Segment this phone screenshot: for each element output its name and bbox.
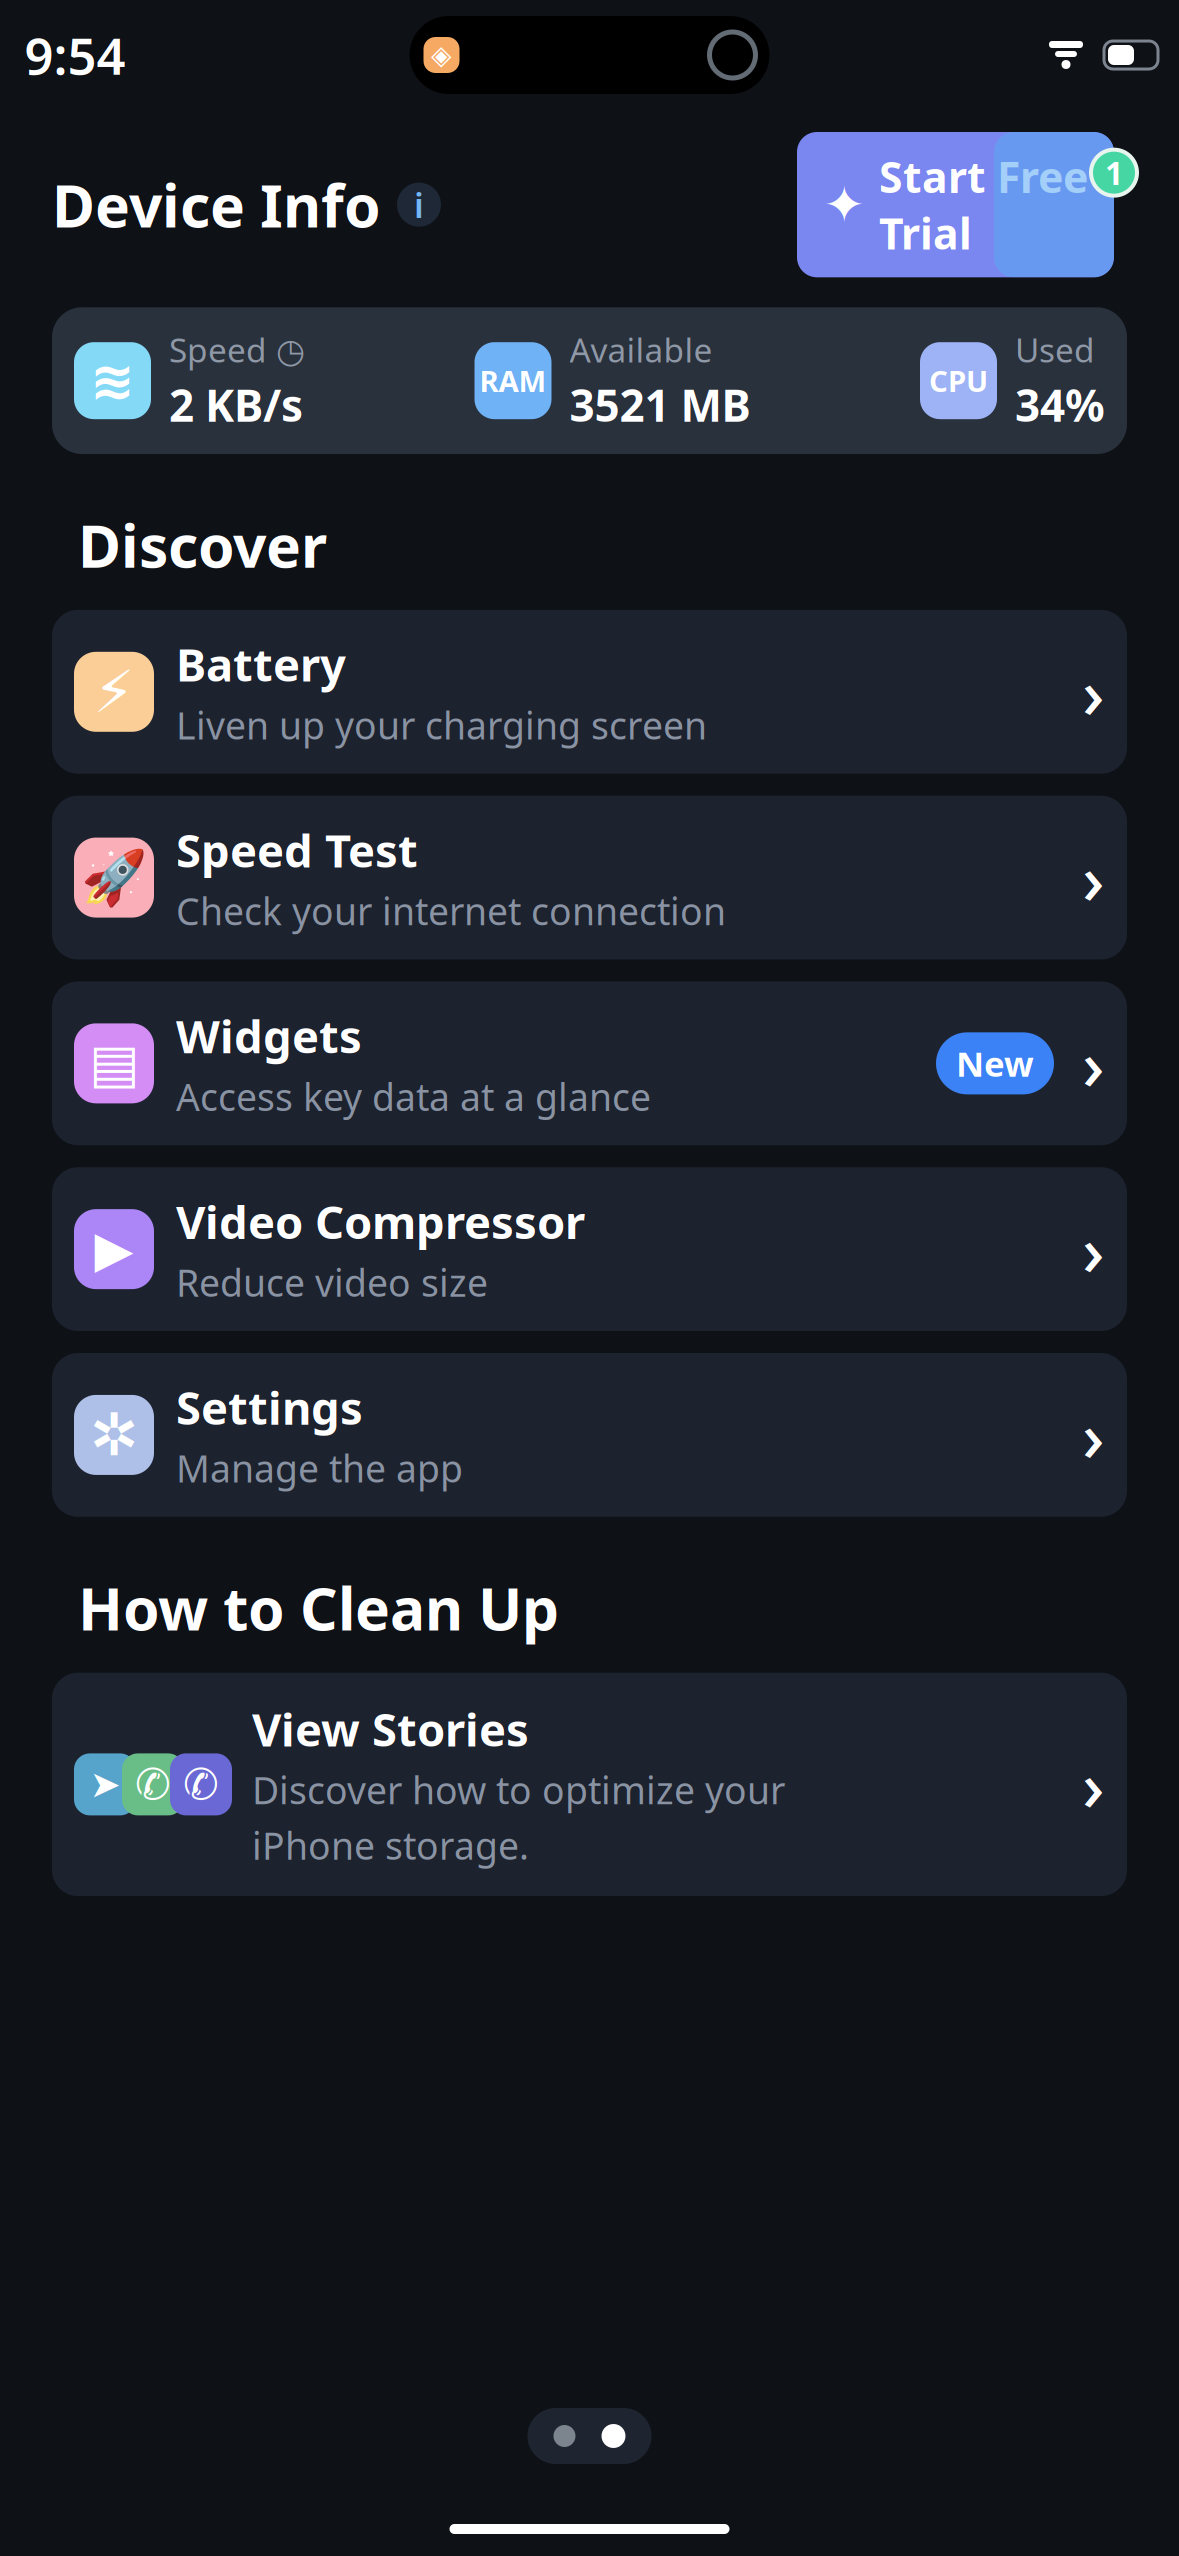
staticText: Check your internet connection	[176, 886, 726, 935]
staticText: Widgets	[176, 1005, 362, 1066]
staticText: ›	[1082, 1389, 1105, 1481]
staticText: iPhone storage.	[252, 1820, 529, 1870]
staticText: Start Free Trial	[879, 148, 1088, 261]
staticText: Manage the app	[176, 1443, 463, 1493]
staticText: 9:54	[24, 21, 125, 89]
staticText: ✲	[89, 1402, 138, 1468]
staticText: ›	[1082, 1738, 1105, 1830]
staticText: Video Compressor	[176, 1191, 585, 1251]
staticText: Device Info	[52, 166, 381, 244]
staticText: ⚡︎	[93, 658, 134, 725]
button[interactable]: Information	[397, 183, 441, 227]
staticText: Discover	[78, 506, 327, 584]
staticText: CPU	[929, 361, 988, 400]
staticText: Discover how to optimize your	[252, 1765, 785, 1814]
staticText: Reduce video size	[176, 1257, 488, 1307]
staticText: 🚀	[81, 847, 147, 908]
staticText: ➤	[89, 1763, 120, 1806]
staticText: ›	[1082, 832, 1105, 924]
staticText: Battery	[176, 634, 346, 694]
staticText: Liven up your charging screen	[176, 700, 707, 750]
staticText: ›	[1082, 1017, 1105, 1109]
button[interactable]: ✲	[52, 1353, 1127, 1517]
staticText: Used	[1015, 327, 1095, 372]
staticText: 2 KB/s	[169, 376, 303, 434]
button[interactable]: ➤	[52, 1673, 1127, 1896]
button[interactable]: 🚀	[52, 796, 1127, 959]
staticText: New	[956, 1040, 1034, 1086]
staticText: ▶	[94, 1220, 133, 1278]
staticText: View Stories	[252, 1699, 529, 1759]
staticText: ◈	[431, 40, 452, 70]
staticText: ✆	[135, 1760, 171, 1809]
staticText: How to Clean Up	[78, 1569, 559, 1647]
staticText: ✆	[183, 1760, 219, 1809]
staticText: 3521 MB	[569, 376, 750, 434]
staticText: Available	[569, 327, 712, 372]
staticText: ✦	[823, 176, 865, 233]
button[interactable]: ✦	[797, 132, 1114, 277]
staticText: Access key data at a glance	[176, 1072, 651, 1121]
staticText: ›	[1082, 1203, 1105, 1295]
staticText: Settings	[176, 1377, 363, 1437]
staticText: RAM	[479, 361, 546, 400]
staticText: ›	[1082, 646, 1105, 738]
staticText: Speed Test	[176, 820, 418, 880]
staticText: i	[414, 182, 424, 228]
staticText: 1	[1105, 151, 1123, 194]
button[interactable]: ▶	[52, 1167, 1127, 1331]
staticText: Speed ◷	[169, 327, 305, 372]
staticText: 34%	[1015, 376, 1105, 434]
staticText: ≋	[90, 350, 135, 411]
staticText: ▤	[89, 1033, 139, 1094]
button[interactable]: ⚡︎	[52, 610, 1127, 774]
button[interactable]: ▤	[52, 981, 1127, 1145]
